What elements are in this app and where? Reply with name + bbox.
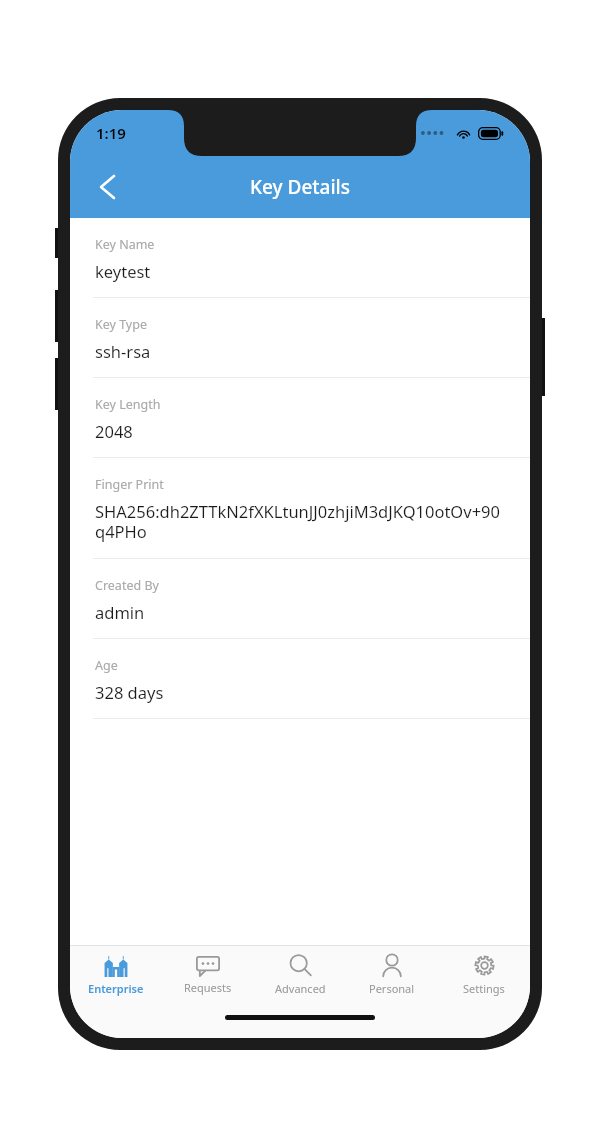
button[interactable]: Personal [346,946,438,1004]
staticText: 328 days [95,681,164,703]
staticText: Requests [184,980,232,995]
staticText: Personal [369,981,415,996]
staticText: Settings [463,981,505,996]
staticText: Advanced [275,981,326,996]
button[interactable]: Enterprise [70,946,162,1004]
staticText: Age [95,657,118,674]
button[interactable]: Key Length [70,378,530,458]
staticText: 2048 [95,420,133,442]
button[interactable]: Created By [70,559,530,639]
button[interactable]: Back [84,164,130,210]
staticText: keytest [95,260,151,282]
button[interactable]: Age [70,639,530,719]
button[interactable]: Key Name [70,218,530,298]
button[interactable]: Requests [162,946,254,1004]
staticText: ssh-rsa [95,340,151,362]
staticText: 1:19 [96,123,126,143]
button[interactable]: Key Type [70,298,530,378]
staticText: admin [95,601,145,623]
button[interactable]: Advanced [254,946,346,1004]
staticText: Key Type [95,316,147,333]
staticText: Created By [95,577,159,594]
button[interactable]: Finger Print [70,458,530,559]
staticText: Key Length [95,396,161,413]
staticText: Finger Print [95,476,164,493]
staticText: SHA256:dh2ZTTkN2fXKLtunJJ0zhjiM3dJKQ10ot… [95,500,505,543]
button[interactable]: Settings [438,946,530,1004]
staticText: Key Name [95,236,155,253]
staticText: Key Details [250,174,350,200]
staticText: Enterprise [88,981,144,996]
